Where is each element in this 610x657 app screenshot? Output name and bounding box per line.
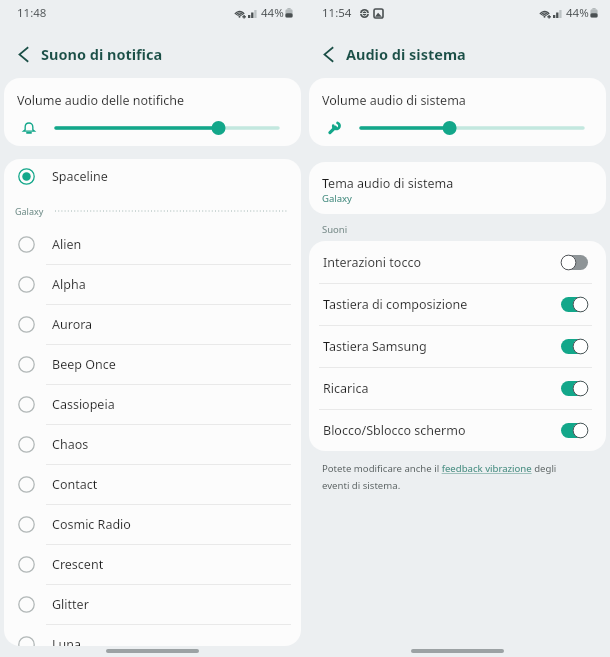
staticText: Alien [52, 236, 82, 253]
staticText: Spaceline [52, 168, 108, 185]
button[interactable]: Crescent [4, 544, 301, 584]
button[interactable]: Ricarica [309, 367, 606, 409]
staticText: Glitter [52, 596, 89, 613]
button[interactable]: Cassiopeia [4, 384, 301, 424]
button[interactable]: Beep Once [4, 344, 301, 384]
staticText: Crescent [52, 556, 104, 573]
staticText: Volume audio di sistema [322, 92, 466, 109]
staticText: Galaxy [322, 192, 352, 205]
button[interactable]: Cosmic Radio [4, 504, 301, 544]
staticText: 11:48 [17, 5, 47, 21]
button[interactable]: Interazioni tocco [309, 241, 606, 283]
button[interactable]: Blocco/Sblocco schermo [309, 409, 606, 451]
staticText: Cosmic Radio [52, 516, 131, 533]
staticText: Interazioni tocco [323, 254, 561, 271]
button[interactable]: Contact [4, 464, 301, 504]
staticText: 44% [566, 5, 589, 21]
staticText: Luna [52, 636, 82, 646]
staticText: Alpha [52, 276, 86, 293]
button[interactable]: Back [315, 41, 341, 67]
button[interactable]: Tastiera di composizione [309, 283, 606, 325]
staticText: Aurora [52, 316, 93, 333]
staticText: Potete modificare anche il feedback vibr… [322, 462, 584, 492]
staticText: Cassiopeia [52, 396, 115, 413]
button[interactable]: Glitter [4, 584, 301, 624]
staticText: Beep Once [52, 356, 116, 373]
staticText: Tastiera di composizione [323, 296, 561, 313]
button[interactable]: Alien [4, 224, 301, 264]
button[interactable]: Back [10, 41, 36, 67]
staticText: Audio di sistema [346, 44, 466, 64]
staticText: 44% [261, 5, 284, 21]
button[interactable]: Luna [4, 624, 301, 646]
staticText: Contact [52, 476, 98, 493]
staticText: Tema audio di sistema [322, 175, 454, 192]
button[interactable]: Spaceline [4, 159, 301, 194]
button[interactable]: Aurora [4, 304, 301, 344]
button[interactable]: Chaos [4, 424, 301, 464]
staticText: Tastiera Samsung [323, 338, 561, 355]
staticText: Volume audio delle notifiche [17, 92, 185, 109]
staticText: Galaxy [15, 205, 44, 217]
button[interactable]: Alpha [4, 264, 301, 304]
staticText: Suono di notifica [41, 44, 163, 64]
staticText: Blocco/Sblocco schermo [323, 422, 561, 439]
staticText: Suoni [322, 223, 348, 236]
staticText: Chaos [52, 436, 89, 453]
button[interactable]: Tastiera Samsung [309, 325, 606, 367]
staticText: Ricarica [323, 380, 561, 397]
button[interactable]: Tema audio di sistema [309, 162, 606, 214]
staticText: 11:54 [322, 5, 352, 21]
